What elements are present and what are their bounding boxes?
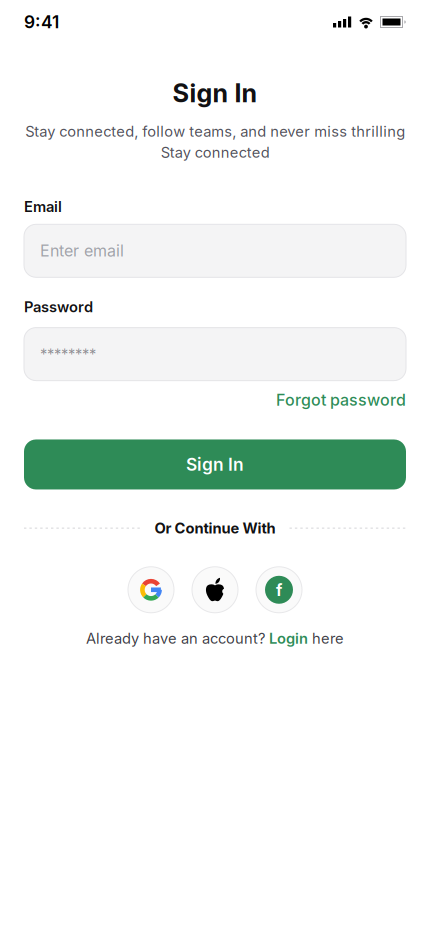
staticText: Password [24, 298, 93, 316]
button[interactable]: Forgot password [276, 391, 406, 409]
button[interactable]: Login [269, 630, 308, 647]
staticText: Sign In [186, 454, 244, 475]
staticText: Email [24, 198, 62, 215]
staticText: Login [269, 630, 308, 647]
staticText: Forgot password [276, 391, 406, 409]
button[interactable]: Sign in with Google [128, 567, 174, 613]
staticText: ******** [40, 345, 96, 363]
staticText: here [312, 630, 344, 647]
staticText: Or Continue With [154, 519, 275, 537]
button[interactable]: Sign In [24, 439, 406, 489]
staticText: Sign In [172, 78, 257, 108]
button[interactable]: Enter email [24, 224, 406, 277]
staticText: f [276, 581, 282, 600]
button[interactable]: Sign in with Apple [192, 567, 238, 613]
button[interactable]: Sign in with Facebook [256, 567, 302, 613]
staticText: Stay connected, follow teams, and never … [25, 123, 405, 161]
staticText: Already have an account? [86, 630, 265, 647]
staticText: Enter email [40, 241, 124, 260]
staticText: 9:41 [24, 12, 59, 32]
button[interactable]: ******** [24, 328, 406, 381]
